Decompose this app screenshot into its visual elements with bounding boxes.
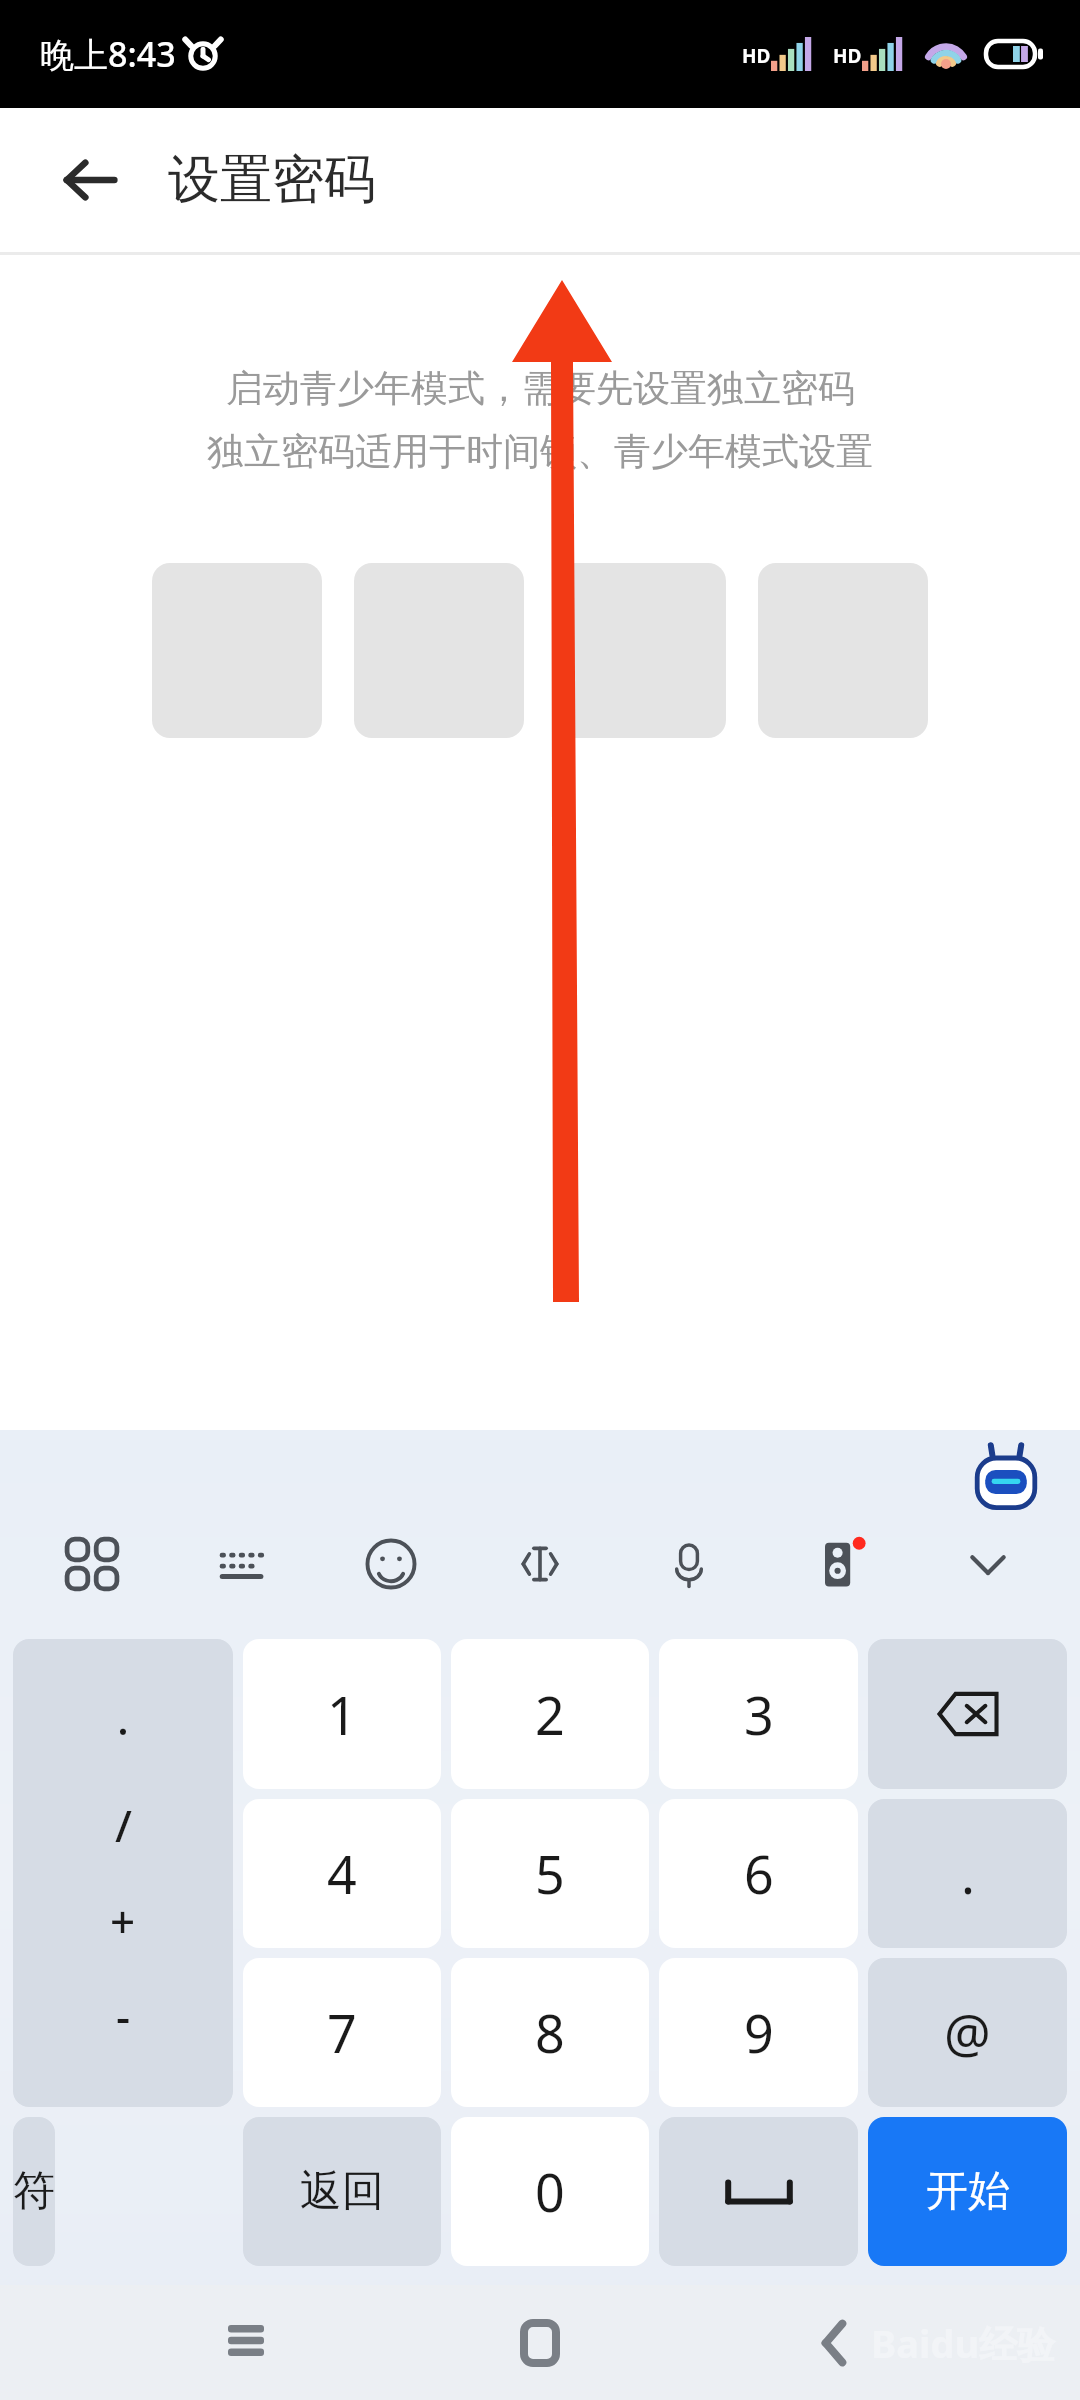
staticText: 0 (535, 2156, 565, 2227)
button[interactable]: 8 (451, 1958, 649, 2107)
staticText: + (110, 1891, 136, 1951)
button[interactable]: Back (786, 2295, 882, 2391)
staticText: 5 (535, 1838, 565, 1909)
staticText: 启动青少年模式，需要先设置独立密码 (226, 365, 855, 412)
staticText: HD (833, 43, 862, 69)
button[interactable]: 返回 (243, 2117, 441, 2266)
button[interactable]: Back (48, 138, 132, 222)
button[interactable]: 3 (659, 1639, 858, 1789)
staticText: 2 (535, 1679, 565, 1750)
button[interactable]: Assistant (960, 1436, 1052, 1528)
staticText: . (961, 1838, 975, 1909)
staticText: 9 (744, 1997, 774, 2068)
button[interactable]: 2 (451, 1639, 649, 1789)
button[interactable]: 6 (659, 1799, 858, 1948)
button[interactable]: · (13, 1639, 233, 2107)
button[interactable]: Space (659, 2117, 858, 2266)
button[interactable]: Sound ad (791, 1516, 887, 1612)
button[interactable]: Edit text (492, 1516, 588, 1612)
button[interactable]: 5 (451, 1799, 649, 1948)
staticText: 4 (327, 1838, 357, 1909)
staticText: 符 (13, 2165, 55, 2218)
button[interactable]: PIN digit (556, 563, 726, 738)
button[interactable]: Home (492, 2295, 588, 2391)
staticText: 1 (327, 1679, 357, 1750)
button[interactable]: Apps (44, 1516, 140, 1612)
staticText: 晚上8:43 (40, 31, 176, 77)
staticText: 7 (327, 1997, 357, 2068)
button[interactable]: Hide keyboard (940, 1516, 1036, 1612)
staticText: 开始 (926, 2165, 1010, 2218)
button[interactable]: Backspace (868, 1639, 1067, 1789)
staticText: @ (944, 1997, 991, 2068)
staticText: 独立密码适用于时间锁、青少年模式设置 (207, 428, 873, 475)
button[interactable]: 7 (243, 1958, 441, 2107)
staticText: 返回 (300, 2165, 384, 2218)
staticText: 3 (744, 1679, 774, 1750)
staticText: / (115, 1795, 132, 1855)
button[interactable]: 0 (451, 2117, 649, 2266)
button[interactable]: 9 (659, 1958, 858, 2107)
staticText: 设置密码 (168, 147, 376, 213)
button[interactable]: 4 (243, 1799, 441, 1948)
staticText: · (117, 1700, 129, 1760)
button[interactable]: 符 (13, 2117, 55, 2266)
button[interactable]: Emoji (343, 1516, 439, 1612)
button[interactable]: 开始 (868, 2117, 1067, 2266)
button[interactable]: Recents (198, 2295, 294, 2391)
button[interactable]: Keyboard (193, 1516, 289, 1612)
staticText: HD (742, 43, 771, 69)
button[interactable]: 1 (243, 1639, 441, 1789)
staticText: - (116, 1986, 131, 2046)
staticText: 6 (744, 1838, 774, 1909)
button[interactable]: Voice input (641, 1516, 737, 1612)
button[interactable]: . (868, 1799, 1067, 1948)
button[interactable]: @ (868, 1958, 1067, 2107)
staticText: 8 (535, 1997, 565, 2068)
